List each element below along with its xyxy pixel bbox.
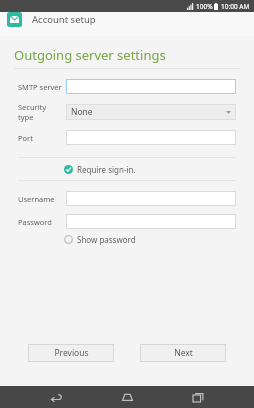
- other: Email app icon: [7, 12, 22, 27]
- staticText: Password: [18, 217, 52, 227]
- staticText: Next: [174, 347, 193, 359]
- staticText: Account setup: [32, 13, 96, 26]
- staticText: Username: [18, 194, 55, 204]
- staticText: Outgoing server settings: [14, 46, 166, 64]
- button[interactable]: Home: [112, 386, 142, 408]
- button[interactable]: None: [66, 104, 236, 120]
- staticText: Security type: [18, 102, 63, 122]
- button[interactable]: Recent apps: [183, 386, 213, 408]
- button[interactable]: Port: [66, 130, 236, 145]
- button[interactable]: SMTP server: [66, 79, 236, 94]
- staticText: Require sign-in.: [77, 164, 136, 175]
- button[interactable]: Show password: [0, 231, 254, 247]
- staticText: 100%: [196, 2, 213, 11]
- button[interactable]: Next: [140, 344, 226, 362]
- button[interactable]: Back: [41, 386, 71, 408]
- button[interactable]: Require sign-in.: [0, 158, 254, 180]
- staticText: Port: [18, 133, 33, 143]
- button[interactable]: Username: [66, 191, 236, 206]
- staticText: Show password: [77, 234, 136, 245]
- staticText: SMTP server: [18, 82, 62, 92]
- button[interactable]: Previous: [28, 344, 114, 362]
- staticText: 10:00 AM: [221, 2, 250, 11]
- staticText: Previous: [54, 347, 89, 359]
- button[interactable]: Password: [66, 214, 236, 229]
- staticText: None: [71, 106, 93, 118]
